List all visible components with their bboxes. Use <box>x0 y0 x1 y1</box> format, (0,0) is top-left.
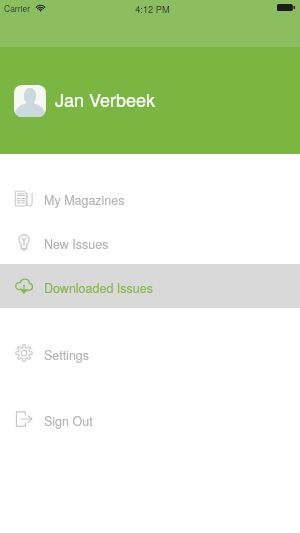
staticText: Sign Out <box>44 412 93 430</box>
button[interactable]: Sign Out <box>0 397 300 441</box>
other: My Magazines <box>15 189 33 207</box>
staticText: New Issues <box>44 235 109 253</box>
staticText: Settings <box>44 346 90 364</box>
button[interactable]: New Issues <box>0 220 300 264</box>
staticText: Downloaded Issues <box>44 279 153 297</box>
staticText: My Magazines <box>44 191 125 209</box>
button[interactable]: My Magazines <box>0 176 300 220</box>
other: New Issues <box>15 233 33 251</box>
staticText: Carrier <box>4 2 30 14</box>
staticText: 4:12 PM <box>135 2 170 15</box>
staticText: Jan Verbeek <box>55 86 156 112</box>
button[interactable]: Settings <box>0 331 300 375</box>
other: Sign Out <box>15 410 33 428</box>
other: Downloaded Issues <box>15 277 33 295</box>
other: Settings <box>15 344 33 362</box>
button[interactable]: Downloaded Issues <box>0 264 300 308</box>
